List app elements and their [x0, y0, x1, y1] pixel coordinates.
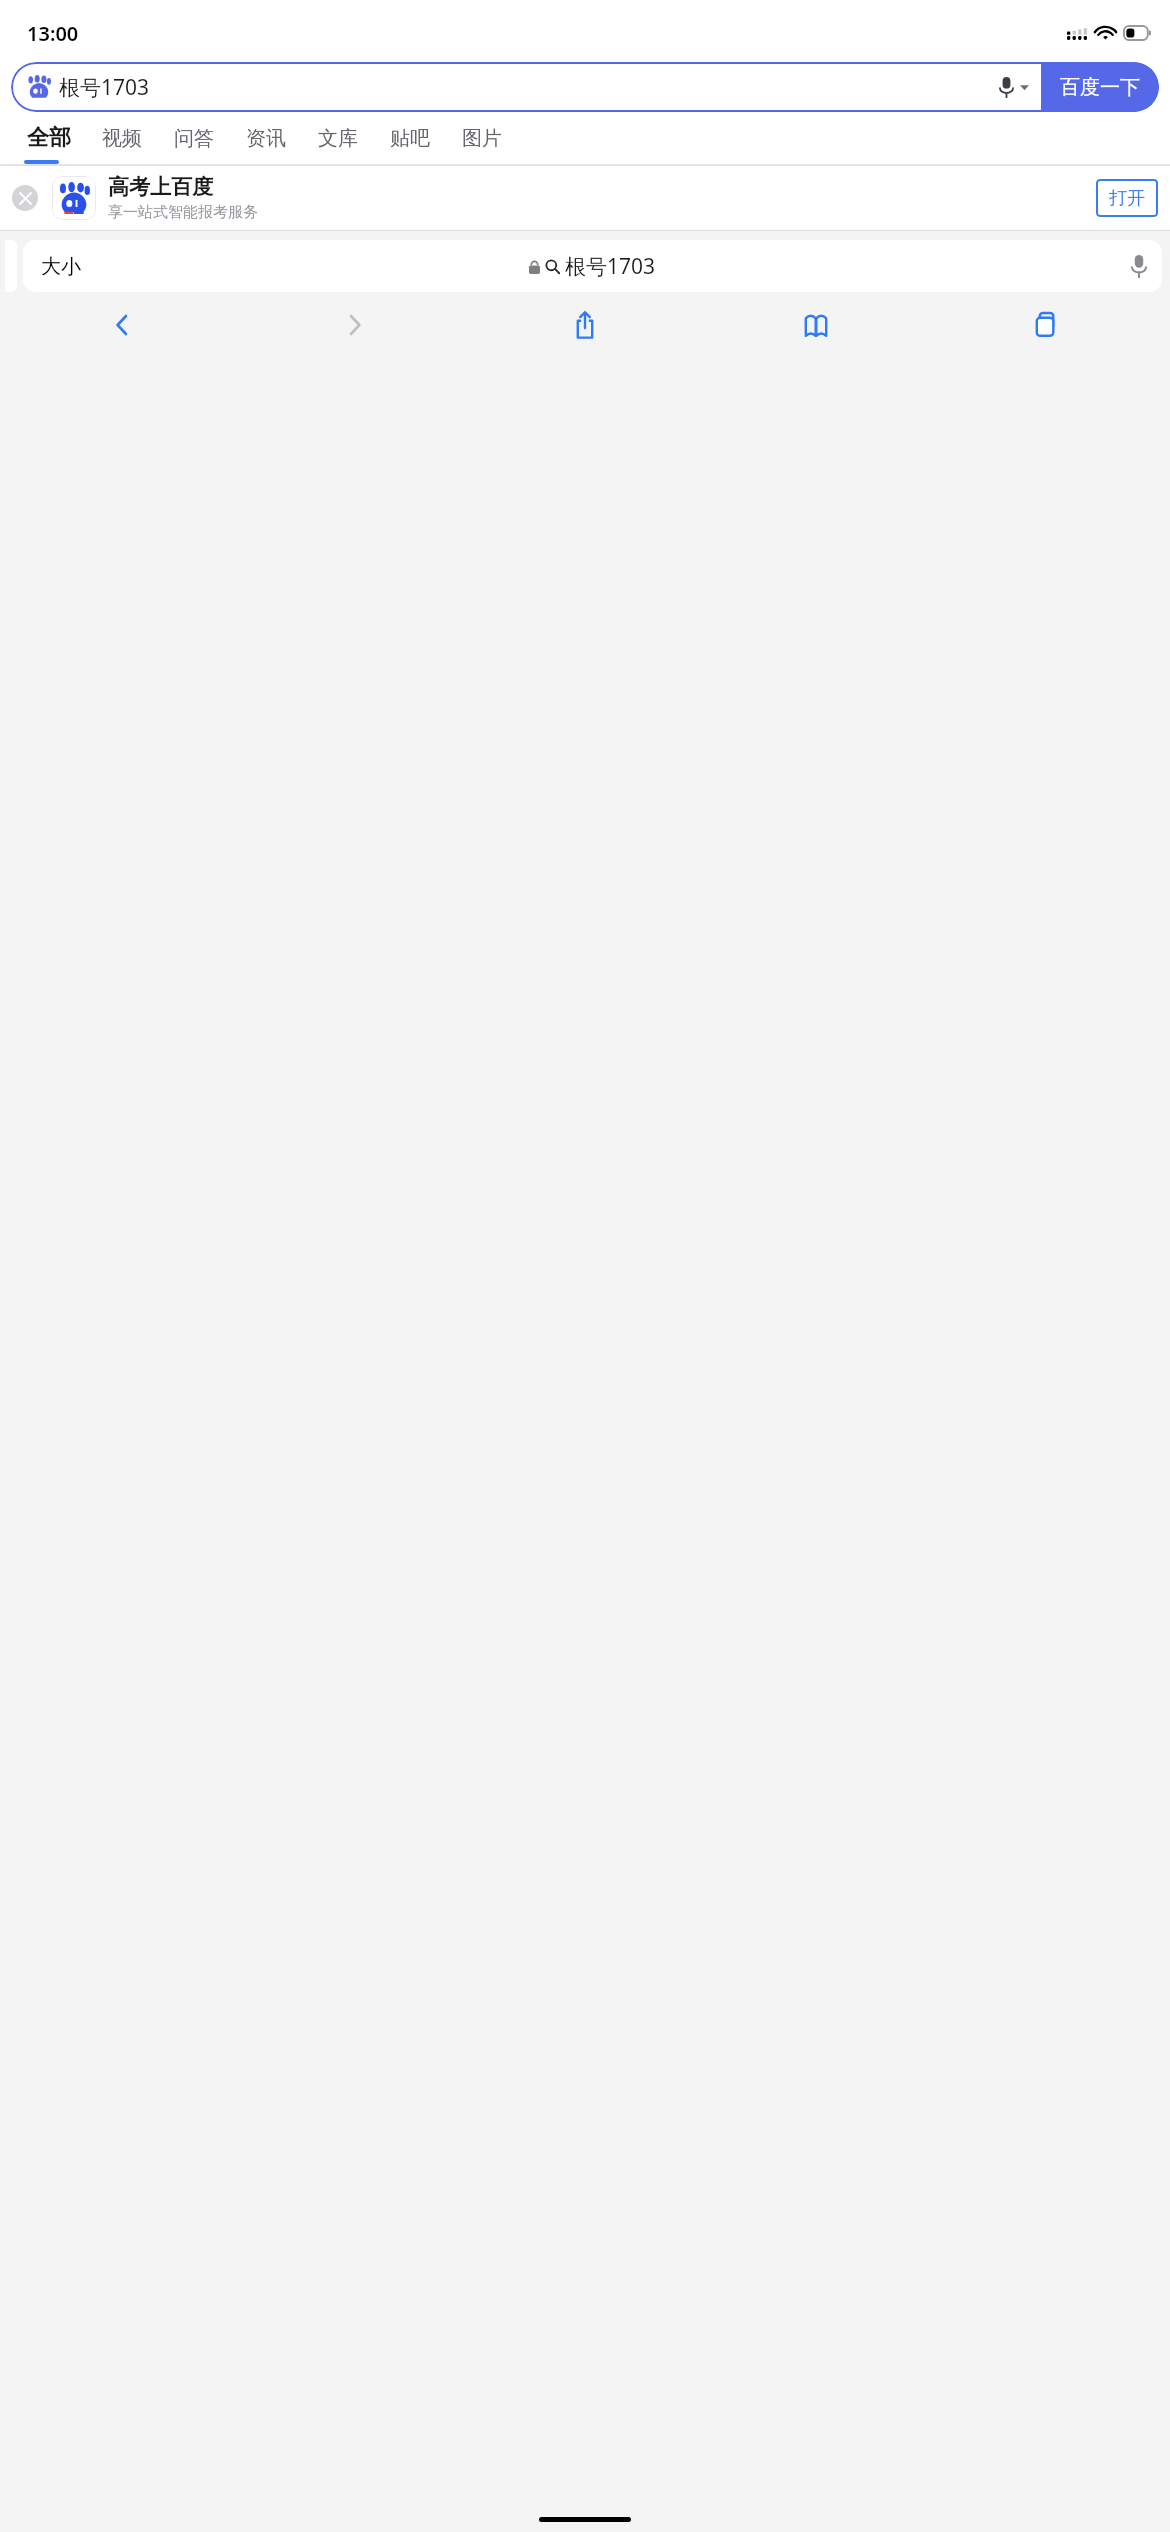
button[interactable]: 全部: [12, 112, 86, 164]
staticText: 13:00: [27, 20, 79, 47]
button[interactable]: Share: [469, 302, 700, 348]
button[interactable]: 根号1703: [11, 62, 1041, 112]
button[interactable]: Forward: [238, 302, 469, 348]
button[interactable]: 图片: [446, 112, 518, 164]
staticText: 全部: [27, 124, 71, 152]
staticText: 享一站式智能报考服务: [108, 203, 258, 222]
button[interactable]: 问答: [158, 112, 230, 164]
button[interactable]: Tabs: [931, 302, 1162, 348]
staticText: 图片: [462, 126, 502, 151]
other: Voice search: [1132, 255, 1146, 278]
staticText: 根号1703: [565, 252, 656, 281]
button[interactable]: 百度一下: [1041, 62, 1159, 112]
button[interactable]: Back: [8, 302, 238, 348]
button[interactable]: 大小: [23, 240, 1162, 292]
button[interactable]: Close ad: [12, 185, 38, 211]
staticText: 打开: [1109, 187, 1145, 210]
button[interactable]: 贴吧: [374, 112, 446, 164]
staticText: 资讯: [246, 126, 286, 151]
staticText: 文库: [318, 126, 358, 151]
staticText: 视频: [102, 126, 142, 151]
staticText: 百度一下: [1060, 75, 1140, 100]
button[interactable]: Bookmarks: [700, 302, 931, 348]
staticText: 问答: [174, 126, 214, 151]
button[interactable]: 视频: [86, 112, 158, 164]
staticText: 大小: [41, 254, 81, 279]
button[interactable]: 打开: [1096, 179, 1158, 217]
button[interactable]: 文库: [302, 112, 374, 164]
staticText: 高考上百度: [108, 174, 213, 200]
staticText: 根号1703: [59, 73, 150, 102]
button[interactable]: 资讯: [230, 112, 302, 164]
staticText: 贴吧: [390, 126, 430, 151]
